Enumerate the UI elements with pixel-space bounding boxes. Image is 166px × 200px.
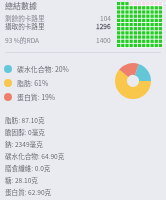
staticText: 總結數據: [5, 0, 37, 12]
staticText: 碳水化合物: 20%: [17, 64, 69, 74]
staticText: 膽固醇: 0毫克: [5, 127, 45, 137]
staticText: 蛋白質: 19%: [17, 92, 56, 102]
staticText: 104: [100, 13, 111, 22]
staticText: 碳水化合物: 64.90克: [5, 151, 65, 161]
staticText: 脂肪: 61%: [17, 78, 49, 88]
staticText: 1296: [96, 21, 111, 30]
staticText: 鈉: 2349毫克: [5, 139, 43, 149]
staticText: 1400: [96, 35, 111, 44]
staticText: 膳食纖維: 0.0克: [5, 163, 51, 173]
staticText: 糖: 28.10克: [5, 175, 38, 185]
staticText: 蛋白質: 62.90克: [5, 187, 52, 197]
staticText: 剩餘的卡路里: [5, 13, 100, 22]
staticText: 脂肪: 87.10克: [5, 115, 45, 125]
staticText: 93 %的RDA: [5, 35, 96, 44]
staticText: 攝取的卡路里: [5, 21, 96, 30]
